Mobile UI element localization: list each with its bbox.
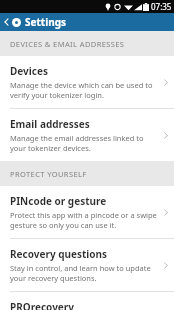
button[interactable]: PINcode or gesture [0,186,174,238]
button[interactable]: Email addresses [0,109,174,161]
staticText: 07:35 [151,1,172,12]
staticText: Recovery questions [10,247,108,261]
staticText: Email addresses [10,117,90,131]
staticText: Protect this app with a pincode or a swi… [10,210,160,230]
button[interactable]: Back [0,13,12,31]
staticText: Manage the email addresses linked to you… [10,133,160,153]
button[interactable]: PROrecovery [0,292,174,310]
button[interactable]: Recovery questions [0,239,174,291]
staticText: PINcode or gesture [10,194,107,208]
staticText: Settings [25,15,66,29]
staticText: Devices [10,64,48,78]
staticText: PROrecovery [10,300,74,310]
button[interactable]: Devices [0,56,174,108]
staticText: DEVICES & EMAIL ADDRESSES [10,39,125,49]
staticText: PROTECT YOURSELF [10,169,87,179]
staticText: Stay in control, and learn how to update… [10,263,160,283]
staticText: Manage the device which can be used to v… [10,80,160,100]
